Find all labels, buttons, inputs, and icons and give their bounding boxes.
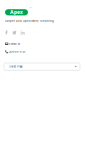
staticText: Carpet and Upholstery Cleaning bbox=[5, 19, 54, 22]
staticText: Select Page bbox=[9, 65, 22, 68]
button[interactable]: Facebook bbox=[5, 30, 8, 35]
staticText: ™ bbox=[30, 7, 31, 10]
button[interactable]: Apex home bbox=[5, 6, 35, 18]
button[interactable]: Twitter bbox=[12, 30, 17, 35]
button[interactable]: LinkedIn bbox=[21, 30, 25, 35]
button[interactable]: 212-686-6727 bbox=[5, 50, 25, 54]
staticText: 212-686-6727 bbox=[9, 50, 25, 53]
button[interactable]: Select Page bbox=[4, 63, 80, 70]
staticText: Contact us bbox=[9, 42, 20, 45]
button[interactable]: Contact us bbox=[5, 42, 20, 45]
staticText: Apex bbox=[10, 9, 23, 15]
